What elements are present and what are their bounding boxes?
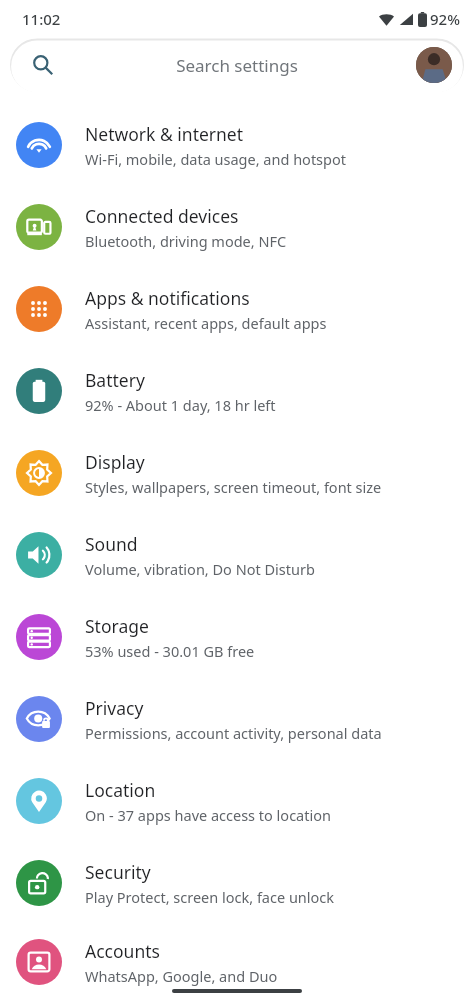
button[interactable]: Network & internet <box>0 104 474 186</box>
staticText: Network & internet <box>85 122 244 146</box>
staticText: 11:02 <box>22 9 61 29</box>
staticText: 92% - About 1 day, 18 hr left <box>85 395 276 415</box>
staticText: Accounts <box>85 939 160 963</box>
staticText: Battery <box>85 368 145 392</box>
button[interactable]: Search settings <box>10 38 464 92</box>
button[interactable]: Sound <box>0 514 474 596</box>
button[interactable]: Location <box>0 760 474 842</box>
button[interactable]: Storage <box>0 596 474 678</box>
button[interactable]: Connected devices <box>0 186 474 268</box>
button[interactable]: Display <box>0 432 474 514</box>
staticText: On - 37 apps have access to location <box>85 805 331 825</box>
button[interactable]: Battery <box>0 350 474 432</box>
staticText: Security <box>85 860 151 884</box>
staticText: Connected devices <box>85 204 239 228</box>
button[interactable]: Apps & notifications <box>0 268 474 350</box>
staticText: Location <box>85 778 156 802</box>
button[interactable]: Security <box>0 842 474 924</box>
staticText: Sound <box>85 532 138 556</box>
staticText: Bluetooth, driving mode, NFC <box>85 231 287 251</box>
staticText: 92% <box>430 9 460 29</box>
staticText: Assistant, recent apps, default apps <box>85 313 327 333</box>
button[interactable]: Account <box>416 47 452 83</box>
staticText: Display <box>85 450 145 474</box>
staticText: Play Protect, screen lock, face unlock <box>85 887 335 907</box>
staticText: Search settings <box>176 54 298 77</box>
staticText: Storage <box>85 614 149 638</box>
staticText: Styles, wallpapers, screen timeout, font… <box>85 477 382 497</box>
staticText: Volume, vibration, Do Not Disturb <box>85 559 315 579</box>
staticText: Apps & notifications <box>85 286 250 310</box>
staticText: Wi-Fi, mobile, data usage, and hotspot <box>85 149 346 169</box>
button[interactable]: Accounts <box>0 924 474 1000</box>
staticText: WhatsApp, Google, and Duo <box>85 966 278 986</box>
staticText: Privacy <box>85 696 144 720</box>
staticText: 53% used - 30.01 GB free <box>85 641 255 661</box>
button[interactable]: Privacy <box>0 678 474 760</box>
staticText: Permissions, account activity, personal … <box>85 723 382 743</box>
